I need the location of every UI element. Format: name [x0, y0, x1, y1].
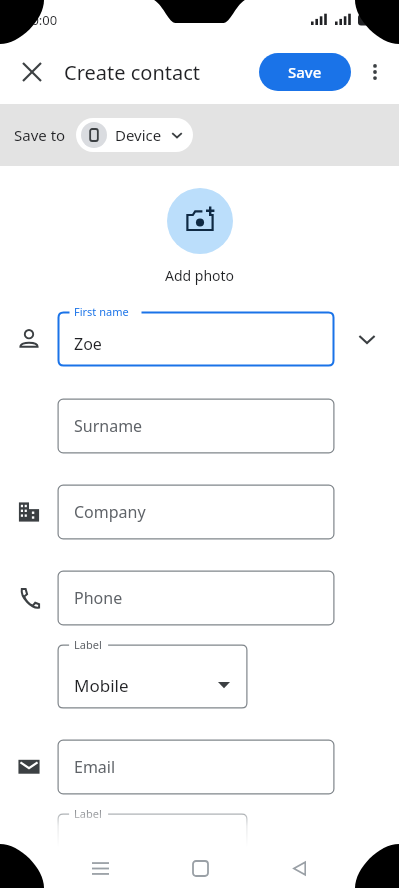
button[interactable]: Phone	[57, 570, 335, 626]
button[interactable]: Email	[57, 739, 335, 795]
staticText: Mobile	[74, 674, 129, 697]
button[interactable]: Expand name fields	[345, 317, 389, 361]
staticText: Zoe	[74, 333, 102, 355]
staticText: Save	[288, 62, 322, 82]
staticText: Device	[115, 125, 162, 145]
staticText: Label	[74, 806, 102, 821]
staticText: Save to	[14, 125, 66, 145]
button[interactable]: Add photo	[167, 188, 233, 254]
staticText: Email	[74, 756, 116, 778]
staticText: Phone	[74, 587, 123, 609]
staticText: Surname	[74, 415, 143, 437]
staticText: Create contact	[64, 59, 201, 86]
button[interactable]: First name	[57, 311, 335, 367]
staticText: Company	[74, 501, 146, 523]
staticText: Add photo	[165, 266, 235, 285]
button[interactable]: Company	[57, 484, 335, 540]
button[interactable]: Recents	[78, 848, 122, 888]
button[interactable]: Back	[277, 848, 321, 888]
button[interactable]: Surname	[57, 398, 335, 454]
staticText: Home	[74, 843, 123, 866]
staticText: First name	[74, 304, 129, 319]
button[interactable]: Label	[57, 813, 248, 878]
button[interactable]: Close	[8, 48, 56, 96]
button[interactable]: Device	[76, 118, 193, 152]
staticText: 10:00	[24, 11, 58, 29]
button[interactable]: Home	[178, 848, 222, 888]
button[interactable]: Save	[259, 53, 351, 91]
button[interactable]: Label	[57, 644, 248, 709]
button[interactable]: More options	[353, 50, 397, 94]
staticText: Label	[74, 637, 102, 652]
